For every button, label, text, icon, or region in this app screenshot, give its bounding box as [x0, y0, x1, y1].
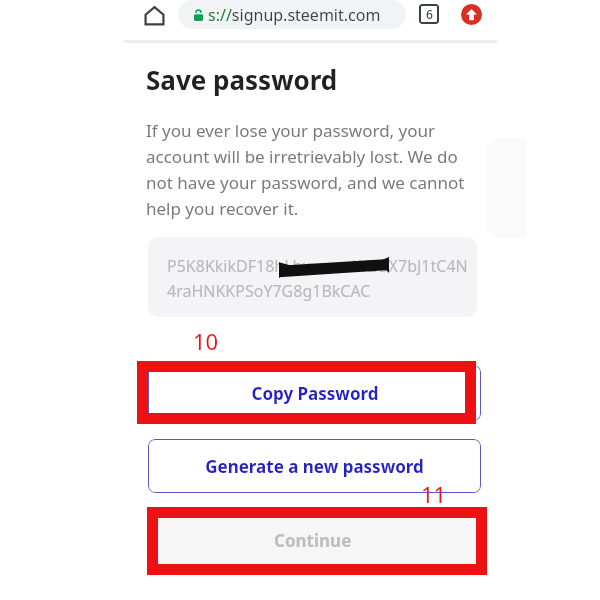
button[interactable]: Copy Password [148, 365, 481, 421]
staticText: Generate a new password [205, 455, 424, 478]
staticText: 10 [193, 326, 219, 356]
staticText: P5K8KkikDF18hLbxxxxxxWZUX7bJ1tC4N 4raHNK… [167, 255, 468, 301]
staticText: If you ever lose your password, your acc… [146, 119, 465, 220]
staticText: Copy Password [251, 382, 379, 405]
staticText: 6 [426, 6, 433, 22]
staticText: Save password [146, 62, 338, 97]
staticText: Continue [274, 529, 352, 552]
button[interactable]: Generate a new password [148, 439, 481, 493]
button[interactable]: Tabs, 6 open [416, 1, 442, 27]
button[interactable]: Home [137, 0, 171, 30]
button[interactable]: s://signup.steemit.com [178, 0, 406, 29]
button[interactable]: Upload [457, 0, 485, 28]
staticText: s://signup.steemit.com [208, 4, 381, 26]
button[interactable]: Continue [148, 511, 477, 569]
staticText: 11 [421, 479, 447, 509]
